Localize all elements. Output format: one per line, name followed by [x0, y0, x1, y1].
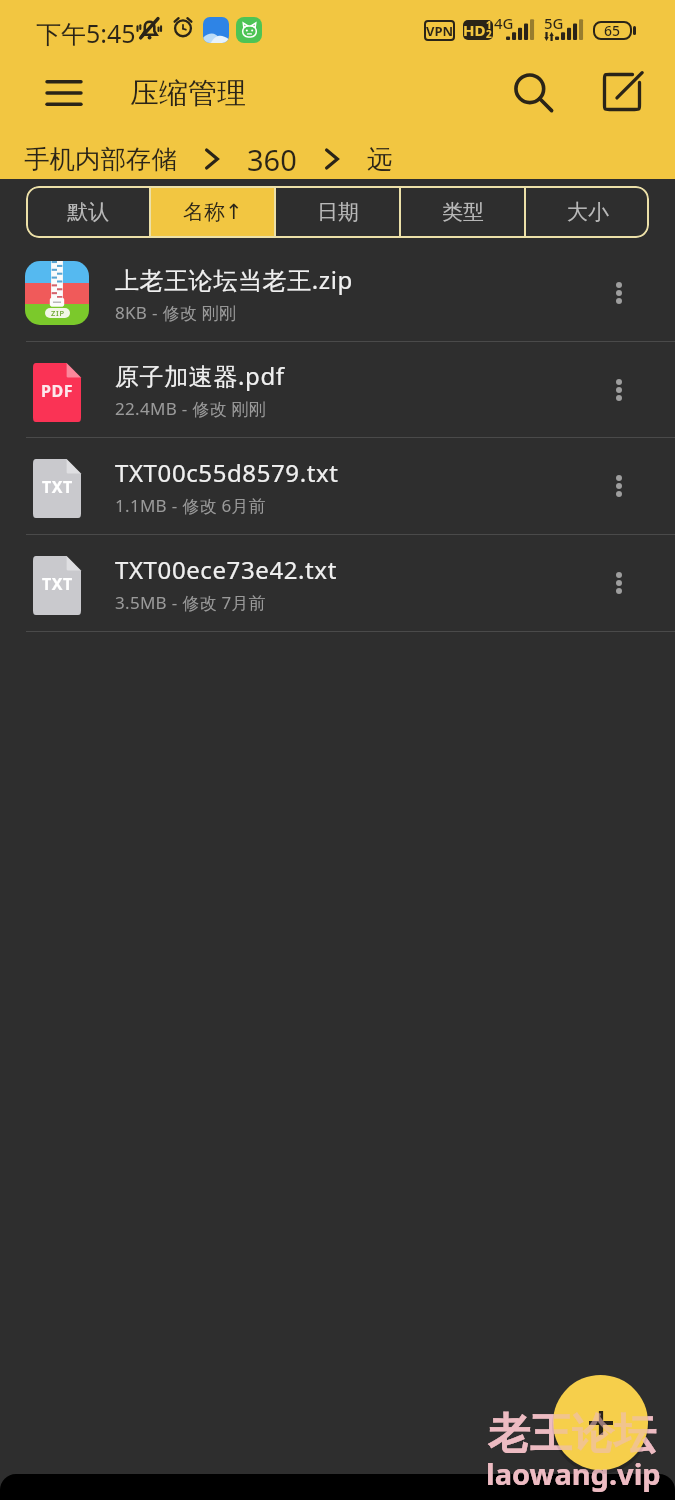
staticText: 3.5MB - 修改 7月前 [115, 591, 267, 614]
staticText: TXT00c55d8579.txt [115, 456, 339, 489]
staticText: 5G [544, 13, 564, 33]
button[interactable]: 名称↑ [151, 186, 274, 238]
staticText: PDF [41, 380, 73, 402]
button[interactable]: 日期 [276, 186, 399, 238]
staticText: 老王论坛 [488, 1408, 656, 1461]
button[interactable]: TXT [0, 535, 675, 631]
staticText: 上老王论坛当老王.zip [115, 263, 353, 296]
button[interactable]: ZIP [0, 245, 675, 341]
staticText: 日期 [317, 199, 359, 225]
button[interactable]: More options [591, 555, 647, 611]
staticText: 360 [247, 140, 297, 178]
staticText: 老王论坛 [488, 1408, 656, 1461]
staticText: 压缩管理 [130, 75, 246, 112]
staticText: 名称↑ [183, 199, 243, 225]
staticText: TXT [42, 573, 73, 595]
staticText: 1.1MB - 修改 6月前 [115, 494, 267, 517]
staticText: 大小 [567, 199, 609, 225]
staticText: HD [463, 20, 486, 40]
staticText: 4G [494, 13, 514, 33]
button[interactable]: Add [553, 1375, 648, 1470]
button[interactable]: 大小 [526, 186, 649, 238]
staticText: 22.4MB - 修改 刚刚 [115, 397, 267, 420]
button[interactable]: PDF [0, 342, 675, 437]
staticText: TXT00ece73e42.txt [115, 553, 337, 586]
staticText: laowang.vip [486, 1454, 661, 1493]
staticText: 原子加速器.pdf [115, 359, 285, 392]
button[interactable]: Compose [591, 61, 653, 123]
staticText: ZIP [51, 308, 65, 318]
staticText: 2 [486, 27, 492, 40]
staticText: TXT [42, 476, 73, 498]
button[interactable]: Search [503, 62, 565, 124]
staticText: VPN [426, 22, 454, 40]
button[interactable]: Menu [33, 62, 95, 124]
staticText: laowang.vip [486, 1454, 661, 1493]
staticText: 1 [486, 20, 492, 32]
button[interactable]: More options [591, 362, 647, 418]
staticText: 默认 [67, 199, 109, 225]
staticText: 手机内部存储 [24, 143, 177, 175]
button[interactable]: TXT [0, 438, 675, 534]
staticText: 远 [367, 143, 393, 175]
staticText: 下午5:45 [36, 16, 136, 50]
button[interactable]: 类型 [401, 186, 524, 238]
button[interactable]: 默认 [26, 186, 149, 238]
button[interactable]: More options [591, 265, 647, 321]
staticText: 65 [604, 21, 621, 40]
button[interactable]: More options [591, 458, 647, 514]
staticText: 类型 [442, 199, 484, 225]
staticText: 8KB - 修改 刚刚 [115, 301, 237, 324]
